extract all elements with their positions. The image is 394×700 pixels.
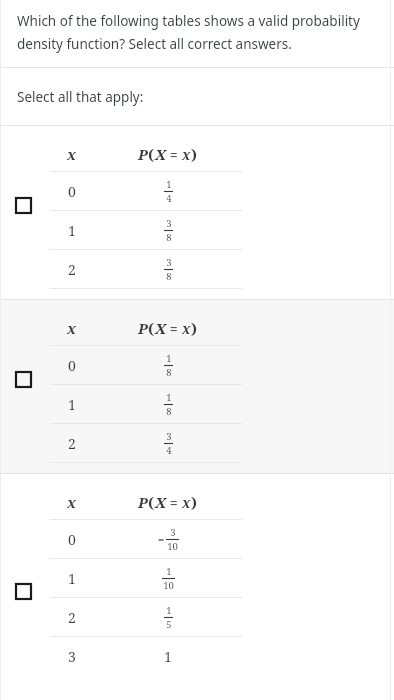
staticText: 4: [166, 192, 172, 205]
staticText: P: [138, 318, 148, 338]
staticText: X: [155, 144, 166, 164]
staticText: 10: [167, 540, 178, 553]
staticText: 2: [68, 260, 76, 279]
staticText: 1: [68, 569, 76, 588]
staticText: =: [166, 145, 182, 164]
staticText: Select all that apply:: [17, 88, 144, 106]
staticText: 1: [166, 604, 172, 617]
staticText: 3: [170, 526, 176, 539]
staticText: x: [67, 144, 77, 164]
staticText: 3: [68, 647, 76, 666]
staticText: (: [148, 492, 155, 512]
staticText: X: [155, 492, 166, 512]
staticText: =: [166, 493, 182, 512]
staticText: =: [166, 319, 182, 338]
button[interactable]: Select this answer: [12, 368, 34, 390]
staticText: (: [148, 144, 155, 164]
staticText: 8: [166, 366, 172, 379]
staticText: 2: [68, 434, 76, 453]
staticText: 1: [166, 178, 172, 191]
button[interactable]: Select this answer: [12, 194, 34, 216]
staticText: ): [191, 318, 198, 338]
button[interactable]: Select this answer: [12, 580, 34, 602]
staticText: 3: [166, 256, 172, 269]
staticText: ): [191, 492, 198, 512]
staticText: 1: [68, 221, 76, 240]
staticText: 8: [166, 231, 172, 244]
staticText: 1: [166, 565, 172, 578]
staticText: 1: [164, 647, 172, 666]
staticText: 0: [68, 356, 76, 375]
staticText: 10: [163, 579, 174, 592]
staticText: 2: [68, 608, 76, 627]
staticText: 8: [166, 405, 172, 418]
staticText: ): [191, 144, 198, 164]
staticText: 3: [166, 217, 172, 230]
staticText: x: [182, 319, 191, 338]
staticText: 8: [166, 270, 172, 283]
staticText: x: [67, 318, 77, 338]
staticText: P: [138, 492, 148, 512]
staticText: 0: [68, 530, 76, 549]
staticText: x: [182, 493, 191, 512]
staticText: x: [67, 492, 77, 512]
staticText: 1: [68, 395, 76, 414]
staticText: 0: [68, 182, 76, 201]
staticText: 3: [166, 430, 172, 443]
staticText: X: [155, 318, 166, 338]
staticText: P: [138, 144, 148, 164]
button[interactable]: Select this answer: [0, 300, 394, 473]
staticText: 1: [166, 352, 172, 365]
staticText: 5: [166, 618, 172, 631]
button[interactable]: Select this answer: [0, 126, 394, 299]
staticText: (: [148, 318, 155, 338]
staticText: x: [182, 145, 191, 164]
staticText: Which of the following tables shows a va…: [17, 12, 370, 53]
staticText: 4: [166, 444, 172, 457]
staticText: 1: [166, 391, 172, 404]
button[interactable]: Select this answer: [0, 474, 394, 675]
